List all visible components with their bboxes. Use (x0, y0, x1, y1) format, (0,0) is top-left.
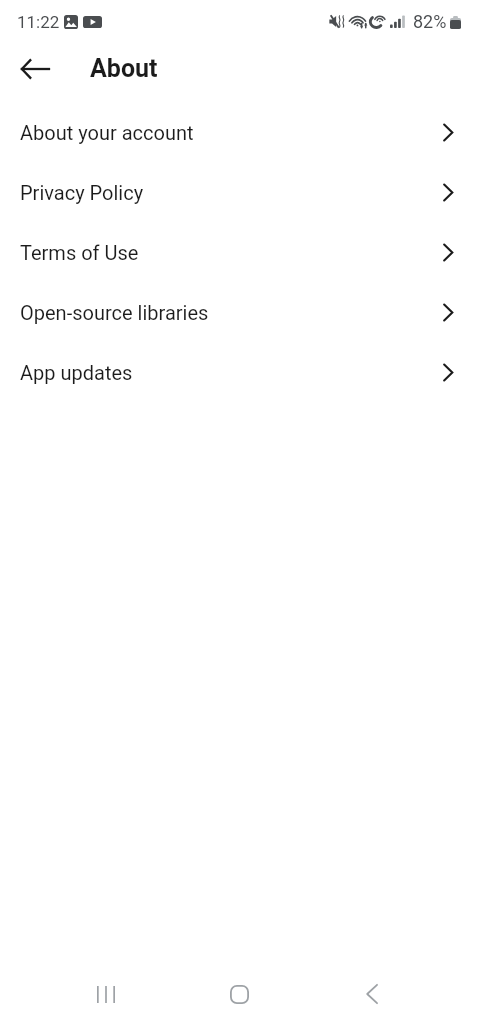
staticText: About (90, 54, 158, 83)
button[interactable]: Recent apps (74, 964, 138, 1024)
button[interactable]: Back (340, 964, 404, 1024)
button[interactable]: Open-source libraries (0, 282, 477, 342)
button[interactable]: About your account (0, 102, 477, 162)
staticText: 82% (413, 11, 447, 32)
staticText: About your account (20, 121, 442, 144)
staticText: Open-source libraries (20, 301, 442, 324)
staticText: App updates (20, 361, 442, 384)
staticText: Privacy Policy (20, 181, 442, 204)
button[interactable]: Terms of Use (0, 222, 477, 282)
button[interactable]: Privacy Policy (0, 162, 477, 222)
button[interactable]: Home (207, 964, 271, 1024)
staticText: Terms of Use (20, 241, 442, 264)
button[interactable]: App updates (0, 342, 477, 402)
button[interactable]: Back (7, 42, 63, 96)
staticText: 11:22 (17, 12, 60, 32)
